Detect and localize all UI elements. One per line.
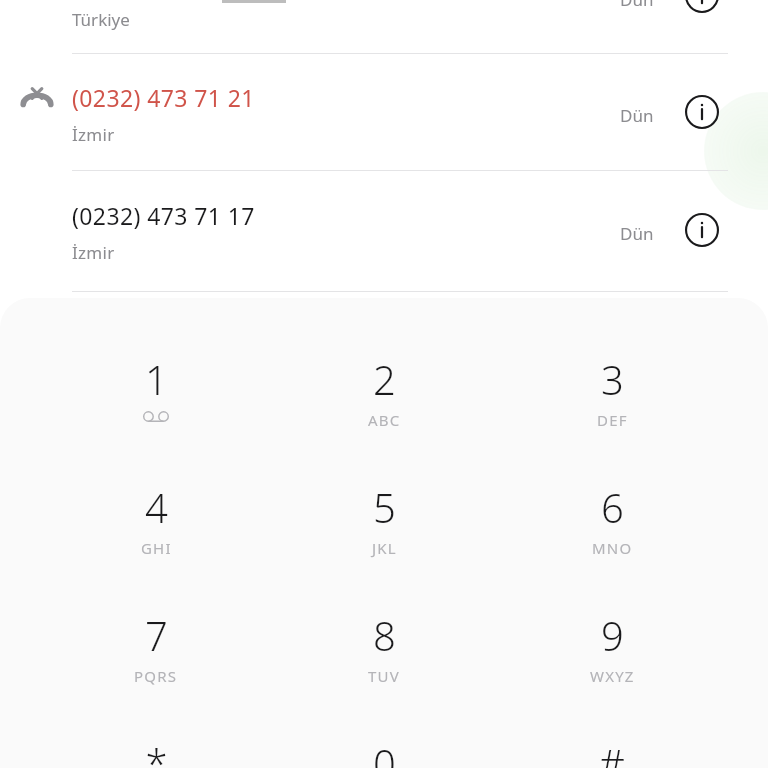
button[interactable]: (0232) 473 71 17 xyxy=(0,182,768,300)
staticText: DEF xyxy=(597,410,628,430)
staticText: JKL xyxy=(372,538,397,558)
staticText: Türkiye xyxy=(72,8,130,31)
staticText: İzmir xyxy=(72,241,115,264)
staticText: Dün xyxy=(620,222,654,245)
button[interactable]: Call details xyxy=(680,208,724,252)
staticText: (0232) 473 71 21 xyxy=(72,82,255,113)
staticText: 6 xyxy=(601,480,624,534)
staticText: * xyxy=(145,736,168,768)
staticText: ABC xyxy=(368,410,401,430)
staticText: # xyxy=(599,736,625,768)
staticText: (0232) 473 71 17 xyxy=(72,200,255,231)
staticText: 3 xyxy=(601,352,624,406)
staticText: 0 xyxy=(373,736,396,768)
button[interactable]: 2 xyxy=(309,352,459,480)
button[interactable]: 0 xyxy=(309,736,459,768)
staticText: MNO xyxy=(592,538,633,558)
button[interactable]: 3 xyxy=(537,352,687,480)
staticText: Dün xyxy=(620,0,654,11)
staticText: İzmir xyxy=(72,123,115,146)
staticText: PQRS xyxy=(134,666,178,686)
button[interactable]: (0232) 473 71 21 xyxy=(0,64,768,182)
staticText: 4 xyxy=(145,480,168,534)
button[interactable]: Call details xyxy=(680,90,724,134)
staticText: WXYZ xyxy=(590,666,635,686)
staticText: 9 xyxy=(601,608,624,662)
button[interactable]: 9 xyxy=(537,608,687,736)
button[interactable]: # xyxy=(537,736,687,768)
staticText: GHI xyxy=(141,538,172,558)
staticText: TUV xyxy=(368,666,400,686)
staticText: 2 xyxy=(373,352,396,406)
button[interactable]: * xyxy=(81,736,231,768)
staticText: 7 xyxy=(145,608,168,662)
button[interactable]: 7 xyxy=(81,608,231,736)
button[interactable]: 1 xyxy=(81,352,231,480)
staticText: 8 xyxy=(373,608,396,662)
button[interactable]: 4 xyxy=(81,480,231,608)
staticText: 1 xyxy=(145,352,168,406)
button[interactable]: 5 xyxy=(309,480,459,608)
button[interactable]: 6 xyxy=(537,480,687,608)
button[interactable]: 8 xyxy=(309,608,459,736)
staticText: 5 xyxy=(373,480,396,534)
staticText: Dün xyxy=(620,104,654,127)
button[interactable]: Call details xyxy=(680,0,724,18)
